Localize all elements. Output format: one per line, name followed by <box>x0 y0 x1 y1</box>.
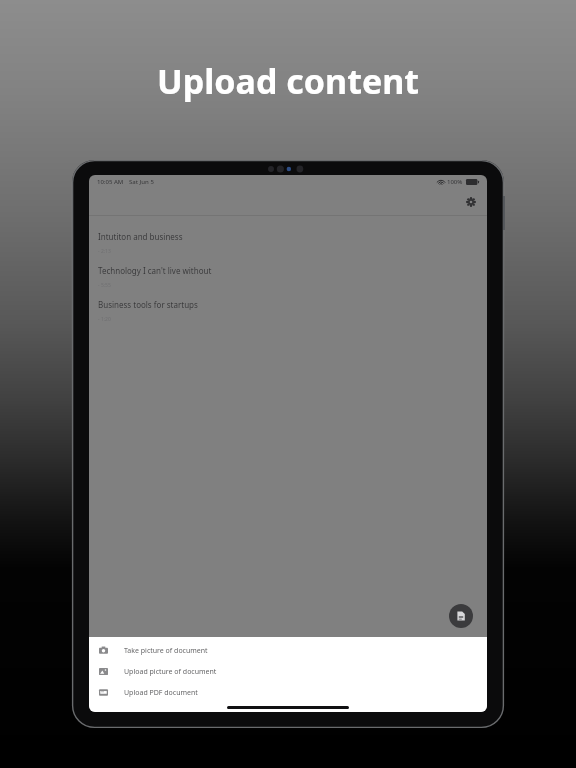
button[interactable]: Technology I can't live without <box>89 260 487 294</box>
button[interactable]: Intutiton and business <box>89 226 487 260</box>
button[interactable]: Business tools for startups <box>89 294 487 328</box>
button[interactable]: Upload picture of document <box>89 661 487 682</box>
staticText: Sat Jun 5 <box>129 178 154 186</box>
staticText: 100% <box>447 178 463 186</box>
staticText: - 1:20 <box>98 316 111 323</box>
staticText: Take picture of document <box>124 646 208 656</box>
staticText: Upload content <box>157 58 420 104</box>
button[interactable]: Settings <box>463 194 479 210</box>
staticText: Technology I can't live without <box>98 265 212 276</box>
button[interactable]: Take picture of document <box>89 640 487 661</box>
staticText: Business tools for startups <box>98 299 198 310</box>
button[interactable]: Upload PDF document <box>89 682 487 703</box>
staticText: 10:05 AM <box>97 178 124 186</box>
staticText: - 5:55 <box>98 282 111 289</box>
staticText: Upload PDF document <box>124 688 198 698</box>
staticText: Upload picture of document <box>124 667 217 677</box>
staticText: - 2:13 <box>98 248 111 255</box>
staticText: Intutiton and business <box>98 231 183 242</box>
button[interactable]: Add document <box>449 604 473 628</box>
